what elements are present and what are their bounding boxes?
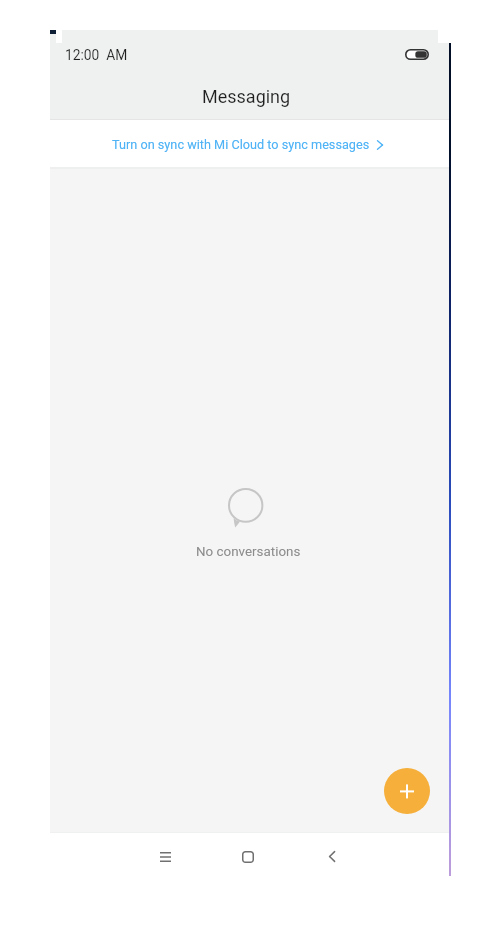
- staticText: Messaging: [202, 86, 291, 107]
- button[interactable]: New message: [384, 768, 430, 814]
- staticText: No conversations: [196, 544, 301, 560]
- staticText: Turn on sync with Mi Cloud to sync messa…: [112, 137, 370, 152]
- staticText: 12:00 AM: [65, 47, 128, 63]
- button[interactable]: Back: [310, 835, 354, 878]
- button[interactable]: Turn on sync with Mi Cloud to sync messa…: [50, 121, 449, 168]
- button[interactable]: Menu: [143, 835, 187, 878]
- button[interactable]: Home: [226, 835, 270, 878]
